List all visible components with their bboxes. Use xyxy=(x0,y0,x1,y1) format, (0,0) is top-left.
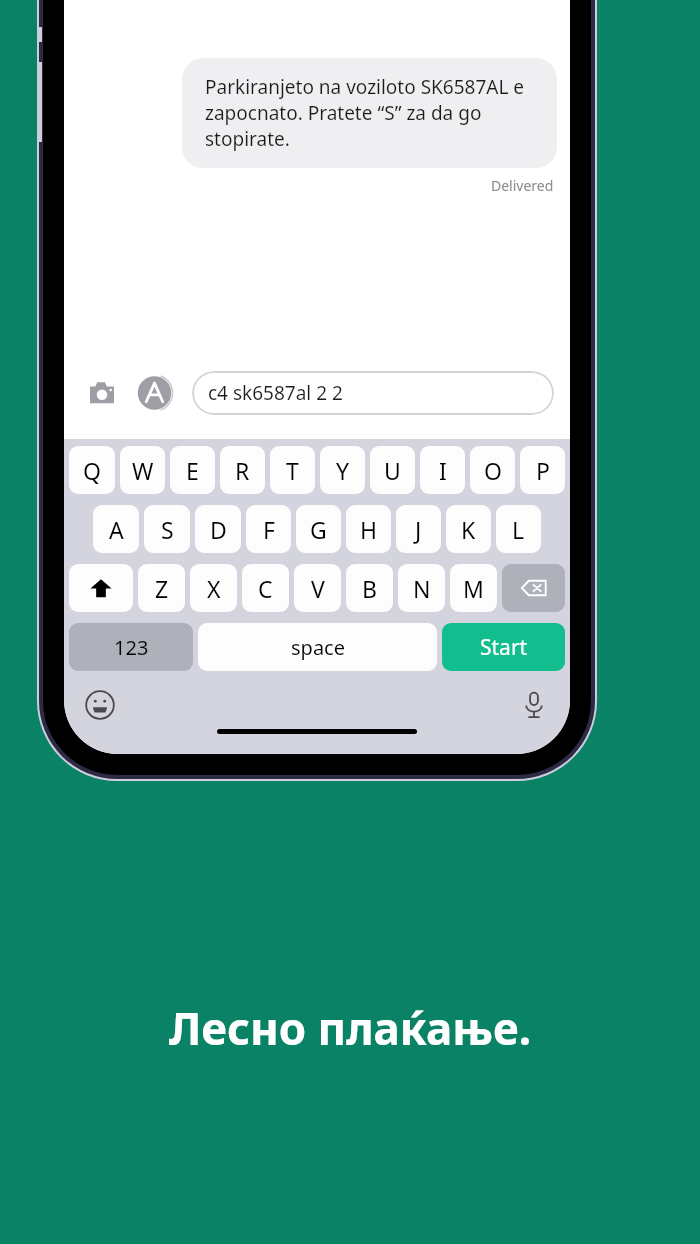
staticText: U xyxy=(384,455,401,486)
staticText: B xyxy=(362,573,377,604)
staticText: P xyxy=(536,455,550,486)
button[interactable]: Y xyxy=(320,446,365,494)
button[interactable]: Backspace xyxy=(502,564,565,612)
staticText: G xyxy=(310,514,327,545)
staticText: V xyxy=(311,573,325,604)
button[interactable]: space xyxy=(198,623,437,671)
staticText: X xyxy=(207,573,221,604)
button[interactable]: F xyxy=(246,505,291,553)
button[interactable]: R xyxy=(220,446,265,494)
staticText: M xyxy=(463,573,484,604)
button[interactable]: Start xyxy=(442,623,565,671)
button[interactable]: T xyxy=(270,446,315,494)
staticText: Z xyxy=(155,573,169,604)
button[interactable]: c4 sk6587al 2 2 xyxy=(192,371,554,415)
button[interactable]: K xyxy=(446,505,491,553)
staticText: S xyxy=(161,514,174,545)
button[interactable]: M xyxy=(450,564,497,612)
button[interactable]: Z xyxy=(138,564,185,612)
button[interactable]: I xyxy=(420,446,465,494)
button[interactable]: D xyxy=(195,505,241,553)
staticText: Parkiranjeto na voziloto SK6587AL e zapo… xyxy=(205,74,534,152)
button[interactable]: N xyxy=(398,564,445,612)
staticText: Лесно плаќање. xyxy=(0,998,700,1058)
button[interactable]: A xyxy=(93,505,139,553)
staticText: Y xyxy=(336,455,350,486)
staticText: 123 xyxy=(114,634,149,661)
staticText: F xyxy=(263,514,275,545)
button[interactable]: Parkiranjeto na voziloto SK6587AL e zapo… xyxy=(182,58,557,168)
staticText: Delivered xyxy=(491,176,554,195)
button[interactable]: Dictation xyxy=(516,687,552,723)
button[interactable]: E xyxy=(170,446,215,494)
button[interactable]: H xyxy=(346,505,391,553)
button[interactable]: G xyxy=(296,505,341,553)
staticText: H xyxy=(360,514,378,545)
button[interactable]: Shift xyxy=(69,564,133,612)
staticText: E xyxy=(186,455,199,486)
staticText: I xyxy=(439,455,447,486)
staticText: J xyxy=(415,514,422,545)
button[interactable]: Q xyxy=(69,446,115,494)
staticText: C xyxy=(258,573,273,604)
staticText: Q xyxy=(83,455,101,486)
button[interactable]: W xyxy=(120,446,165,494)
button[interactable]: O xyxy=(470,446,515,494)
staticText: R xyxy=(235,455,250,486)
staticText: N xyxy=(413,573,431,604)
staticText: L xyxy=(512,514,525,545)
button[interactable]: J xyxy=(396,505,441,553)
button[interactable]: Emoji xyxy=(82,687,118,723)
staticText: D xyxy=(210,514,227,545)
button[interactable]: 123 xyxy=(69,623,193,671)
button[interactable]: App Store xyxy=(134,371,178,415)
button[interactable]: S xyxy=(144,505,190,553)
staticText: c4 sk6587al 2 2 xyxy=(208,380,343,406)
staticText: W xyxy=(132,455,154,486)
staticText: O xyxy=(484,455,502,486)
staticText: space xyxy=(291,634,345,661)
staticText: K xyxy=(461,514,476,545)
button[interactable]: Camera xyxy=(80,371,124,415)
button[interactable]: U xyxy=(370,446,415,494)
button[interactable]: V xyxy=(294,564,341,612)
button[interactable]: C xyxy=(242,564,289,612)
button[interactable]: L xyxy=(496,505,541,553)
staticText: A xyxy=(109,514,124,545)
staticText: T xyxy=(286,455,299,486)
button[interactable]: P xyxy=(520,446,565,494)
button[interactable]: B xyxy=(346,564,393,612)
button[interactable]: X xyxy=(190,564,237,612)
staticText: Start xyxy=(480,633,528,662)
